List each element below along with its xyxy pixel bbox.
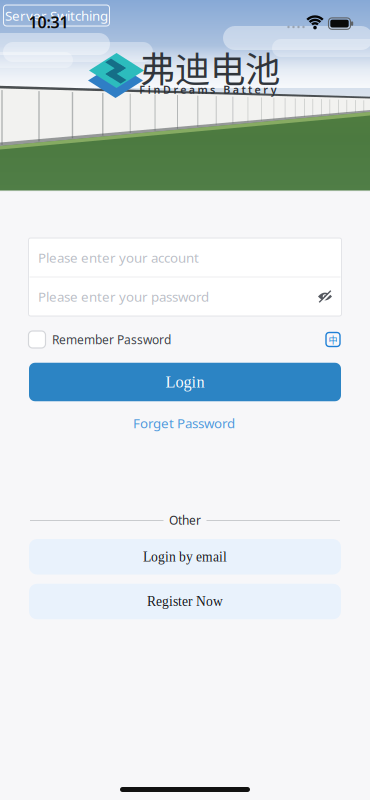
button[interactable]: Remember Password — [28, 329, 228, 349]
staticText: 中 — [328, 333, 337, 346]
staticText: Other — [169, 512, 201, 528]
staticText: FinDreams Battery — [139, 82, 277, 97]
staticText: Login by email — [143, 549, 227, 564]
staticText: Remember Password — [52, 331, 171, 347]
button[interactable] — [315, 286, 335, 306]
button[interactable]: Login by email — [29, 539, 341, 574]
button[interactable]: Register Now — [29, 584, 341, 619]
staticText: Please enter your password — [38, 288, 209, 305]
button[interactable]: Please enter your password — [38, 288, 338, 305]
staticText: Register Now — [147, 594, 223, 609]
staticText: Forget Password — [133, 414, 235, 432]
staticText: 10:31 — [28, 11, 68, 33]
staticText: Please enter your account — [38, 249, 199, 266]
staticText: Login — [165, 373, 204, 391]
staticText: 弗迪电池 — [140, 41, 280, 93]
button[interactable]: Please enter your account — [38, 249, 338, 266]
button[interactable]: Forget Password — [133, 414, 235, 432]
staticText: Server Switching — [5, 7, 108, 24]
button[interactable]: Login — [29, 363, 341, 401]
button[interactable]: Server Switching — [3, 5, 109, 26]
button[interactable]: 中 — [326, 332, 340, 346]
